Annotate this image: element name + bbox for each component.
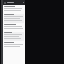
button[interactable] [4,24,24,31]
button[interactable] [4,32,24,41]
button[interactable] [4,42,24,49]
button[interactable] [4,6,24,13]
button[interactable]: App bar [3,0,25,5]
button[interactable] [4,14,24,23]
